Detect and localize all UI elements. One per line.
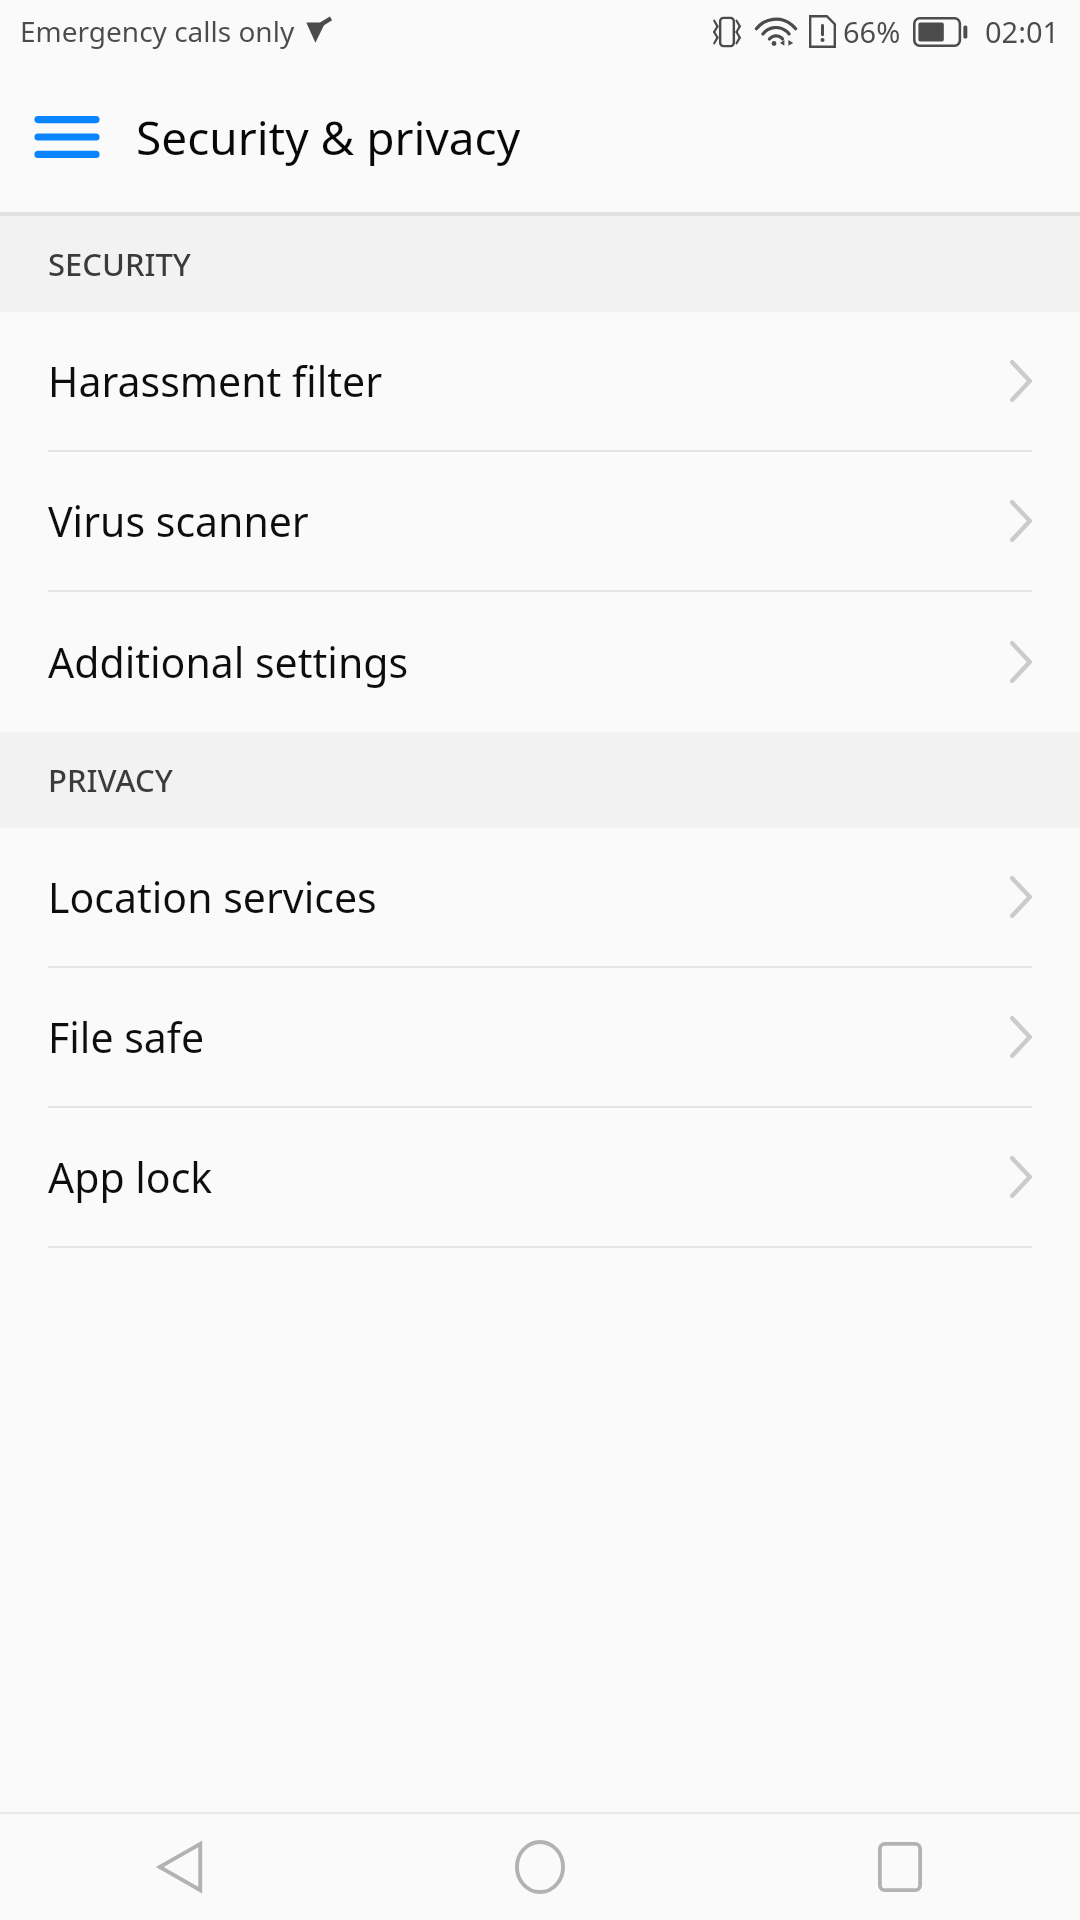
button[interactable]: Location services — [0, 828, 1080, 966]
button[interactable]: File safe — [0, 968, 1080, 1106]
button[interactable]: Back — [0, 1814, 360, 1920]
button[interactable]: Home — [360, 1814, 720, 1920]
staticText: PRIVACY — [48, 759, 173, 801]
staticText: SECURITY — [48, 243, 191, 285]
staticText: 02:01 — [985, 12, 1060, 51]
staticText: Security & privacy — [136, 106, 521, 169]
button[interactable]: Recent apps — [720, 1814, 1080, 1920]
button[interactable]: Menu — [24, 94, 110, 180]
button[interactable]: Additional settings — [0, 592, 1080, 732]
button[interactable]: Harassment filter — [0, 312, 1080, 450]
staticText: Harassment filter — [48, 353, 383, 409]
staticText: 66% — [843, 12, 901, 51]
staticText: Additional settings — [48, 634, 409, 690]
button[interactable]: App lock — [0, 1108, 1080, 1246]
staticText: File safe — [48, 1009, 205, 1065]
staticText: Emergency calls only — [20, 12, 295, 50]
staticText: Virus scanner — [48, 493, 309, 549]
button[interactable]: Virus scanner — [0, 452, 1080, 590]
staticText: Location services — [48, 869, 377, 925]
staticText: App lock — [48, 1149, 213, 1205]
